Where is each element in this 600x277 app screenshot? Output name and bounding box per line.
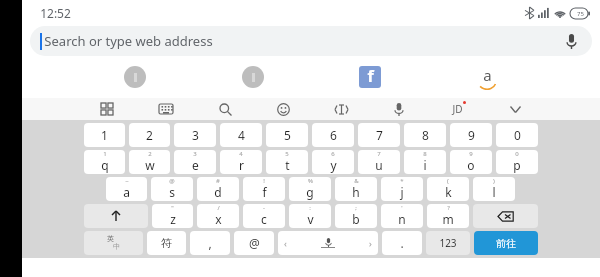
- staticText: y: [330, 157, 337, 173]
- button[interactable]: 0: [496, 150, 538, 174]
- staticText: 中: [113, 242, 120, 251]
- button[interactable]: text: [330, 98, 352, 120]
- button[interactable]: 7: [358, 123, 400, 147]
- button[interactable]: Shortcut: [236, 60, 270, 94]
- staticText: 5: [285, 150, 289, 158]
- staticText: 1: [101, 127, 108, 143]
- button[interactable]: Voice search: [556, 26, 586, 56]
- button[interactable]: grid: [96, 98, 118, 120]
- staticText: ': [401, 204, 403, 212]
- staticText: f: [262, 184, 267, 200]
- staticText: !: [263, 177, 265, 185]
- staticText: ›: [369, 237, 372, 249]
- button[interactable]: mic: [388, 98, 410, 120]
- button[interactable]: Numbers: [426, 231, 470, 255]
- staticText: ": [171, 204, 174, 212]
- staticText: m: [442, 211, 454, 227]
- staticText: 6: [331, 150, 335, 158]
- staticText: l: [492, 184, 496, 200]
- button[interactable]: Shortcut: [118, 60, 152, 94]
- button[interactable]: Shortcut: [353, 60, 387, 94]
- button[interactable]: down: [504, 98, 526, 120]
- button[interactable]: ': [381, 204, 423, 228]
- button[interactable]: *: [381, 177, 423, 201]
- button[interactable]: %: [289, 177, 331, 201]
- staticText: %: [308, 177, 313, 185]
- button[interactable]: Space: [278, 231, 378, 255]
- button[interactable]: /: [197, 204, 239, 228]
- button[interactable]: @: [151, 177, 193, 201]
- button[interactable]: Search or type web address: [30, 26, 592, 56]
- staticText: 0: [515, 150, 519, 158]
- button[interactable]: 5: [266, 150, 308, 174]
- button[interactable]: Language: [84, 231, 143, 255]
- staticText: z: [170, 211, 176, 227]
- button[interactable]: kb: [155, 98, 177, 120]
- staticText: t: [285, 157, 290, 173]
- staticText: x: [215, 211, 222, 227]
- button[interactable]: 4: [220, 123, 262, 147]
- button[interactable]: 1: [84, 123, 125, 147]
- button[interactable]: ?: [427, 204, 469, 228]
- staticText: 9: [468, 127, 475, 143]
- button[interactable]: 9: [450, 123, 492, 147]
- button[interactable]: &: [335, 177, 377, 201]
- staticText: 12:52: [40, 5, 71, 21]
- button[interactable]: 8: [404, 123, 446, 147]
- button[interactable]: 0: [496, 123, 538, 147]
- button[interactable]: 8: [404, 150, 446, 174]
- staticText: 4: [239, 150, 243, 158]
- button[interactable]: ;: [335, 204, 377, 228]
- button[interactable]: 符: [147, 231, 186, 255]
- button[interactable]: 1: [84, 150, 125, 174]
- button[interactable]: @: [234, 231, 274, 255]
- staticText: f: [367, 66, 374, 87]
- staticText: .: [400, 235, 404, 251]
- staticText: 75: [577, 10, 584, 18]
- button[interactable]: 3: [174, 150, 216, 174]
- button[interactable]: ): [473, 177, 515, 201]
- staticText: 4: [238, 127, 245, 143]
- button[interactable]: :: [289, 204, 331, 228]
- staticText: v: [307, 211, 314, 227]
- button[interactable]: 5: [266, 123, 308, 147]
- staticText: @: [249, 235, 260, 251]
- staticText: (: [447, 177, 449, 185]
- button[interactable]: (: [427, 177, 469, 201]
- button[interactable]: ,: [190, 231, 230, 255]
- button[interactable]: 6: [312, 150, 354, 174]
- staticText: p: [513, 157, 521, 173]
- staticText: o: [467, 157, 475, 173]
- button[interactable]: 2: [129, 150, 170, 174]
- staticText: 8: [423, 150, 427, 158]
- button[interactable]: Backspace: [473, 204, 538, 228]
- button[interactable]: ~: [106, 177, 147, 201]
- staticText: 2: [148, 150, 152, 158]
- button[interactable]: search: [214, 98, 236, 120]
- button[interactable]: emoji: [272, 98, 294, 120]
- button[interactable]: !: [243, 177, 285, 201]
- button[interactable]: 6: [312, 123, 354, 147]
- staticText: 符: [161, 236, 172, 250]
- button[interactable]: 前往: [474, 231, 538, 255]
- staticText: n: [398, 211, 406, 227]
- button[interactable]: 4: [220, 150, 262, 174]
- staticText: JD: [452, 102, 463, 116]
- button[interactable]: .: [382, 231, 422, 255]
- button[interactable]: Shift: [84, 204, 148, 228]
- staticText: c: [261, 211, 267, 227]
- button[interactable]: #: [197, 177, 239, 201]
- staticText: a: [123, 184, 130, 200]
- button[interactable]: 3: [174, 123, 216, 147]
- button[interactable]: jd: [446, 98, 468, 120]
- staticText: 2: [146, 127, 153, 143]
- button[interactable]: 9: [450, 150, 492, 174]
- button[interactable]: -: [243, 204, 285, 228]
- staticText: j: [400, 184, 404, 200]
- staticText: 3: [193, 150, 197, 158]
- staticText: i: [423, 157, 427, 173]
- button[interactable]: ": [152, 204, 193, 228]
- button[interactable]: 7: [358, 150, 400, 174]
- button[interactable]: 2: [129, 123, 170, 147]
- button[interactable]: Shortcut: [470, 60, 504, 94]
